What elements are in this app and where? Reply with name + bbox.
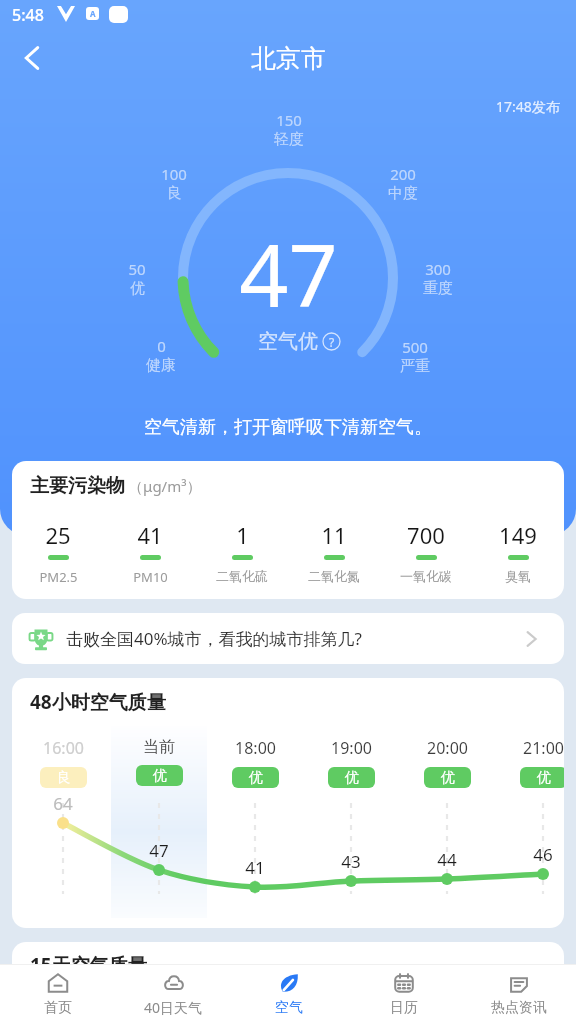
staticText: 19:00 — [331, 737, 372, 759]
staticText: ? — [329, 334, 335, 350]
staticText: 11 — [321, 520, 347, 550]
staticText: 优 — [130, 279, 145, 298]
staticText: 500 — [402, 337, 428, 357]
staticText: 47 — [149, 839, 169, 862]
staticText: 臭氧 — [505, 568, 531, 584]
staticText: 日历 — [390, 999, 418, 1017]
staticText: 优 — [441, 769, 455, 787]
staticText: 44 — [437, 848, 457, 871]
button[interactable]: 40日天气 — [116, 964, 231, 1024]
staticText: 主要污染物 — [30, 474, 125, 498]
staticText: 200 — [390, 164, 416, 184]
button[interactable]: Info — [322, 332, 341, 351]
staticText: 优 — [345, 769, 359, 787]
staticText: 149 — [499, 520, 537, 550]
staticText: 18:00 — [235, 737, 276, 759]
staticText: 48小时空气质量 — [30, 689, 166, 715]
staticText: 健康 — [146, 356, 176, 375]
staticText: 25 — [45, 520, 71, 550]
staticText: 40日天气 — [144, 998, 203, 1017]
staticText: 空气清新，打开窗呼吸下清新空气。 — [144, 416, 432, 439]
staticText: PM2.5 — [39, 568, 78, 586]
staticText: 43 — [341, 850, 361, 873]
staticText: PM10 — [133, 568, 168, 586]
staticText: 64 — [53, 792, 73, 815]
staticText: 5:48 — [12, 4, 44, 26]
staticText: 20:00 — [427, 737, 468, 759]
staticText: 41 — [137, 520, 163, 550]
button[interactable]: 热点资讯 — [461, 964, 576, 1024]
staticText: 41 — [245, 856, 265, 879]
staticText: 首页 — [44, 999, 72, 1017]
button[interactable]: 击败全国40%城市，看我的城市排第几? — [12, 613, 564, 664]
staticText: 严重 — [400, 357, 430, 376]
staticText: 0 — [157, 336, 166, 356]
staticText: 良 — [167, 184, 182, 203]
staticText: 优 — [153, 767, 167, 785]
staticText: 50 — [128, 259, 146, 279]
staticText: 100 — [161, 164, 187, 184]
staticText: 二氧化氮 — [308, 568, 360, 584]
staticText: 一氧化碳 — [400, 568, 452, 584]
button[interactable]: Back — [10, 36, 54, 80]
staticText: 优 — [249, 769, 263, 787]
staticText: 47 — [239, 215, 338, 332]
staticText: 150 — [276, 110, 302, 130]
staticText: 16:00 — [43, 737, 84, 759]
staticText: 热点资讯 — [491, 999, 547, 1017]
staticText: 北京市 — [251, 43, 326, 74]
staticText: 1 — [236, 520, 249, 550]
button[interactable]: 日历 — [346, 964, 461, 1024]
staticText: 击败全国40%城市，看我的城市排第几? — [66, 627, 362, 650]
staticText: 空气 — [275, 999, 303, 1017]
staticText: 轻度 — [274, 130, 304, 149]
staticText: 46 — [533, 843, 553, 866]
button[interactable]: 空气 — [231, 964, 346, 1024]
staticText: （μg/m³） — [128, 476, 202, 496]
staticText: 二氧化硫 — [216, 568, 268, 584]
staticText: 700 — [407, 520, 445, 550]
button[interactable]: 首页 — [0, 964, 116, 1024]
staticText: 优 — [537, 769, 551, 787]
staticText: 重度 — [423, 279, 453, 298]
staticText: 中度 — [388, 184, 418, 203]
staticText: 空气优 — [258, 329, 318, 354]
staticText: 当前 — [143, 737, 175, 757]
staticText: 300 — [425, 259, 451, 279]
staticText: 17:48发布 — [496, 97, 560, 116]
button[interactable]: 15天空气质量 — [12, 942, 564, 992]
staticText: 21:00 — [523, 737, 564, 759]
staticText: A — [90, 8, 96, 19]
staticText: 良 — [57, 769, 71, 787]
staticText: 15天空气质量 — [30, 952, 147, 978]
